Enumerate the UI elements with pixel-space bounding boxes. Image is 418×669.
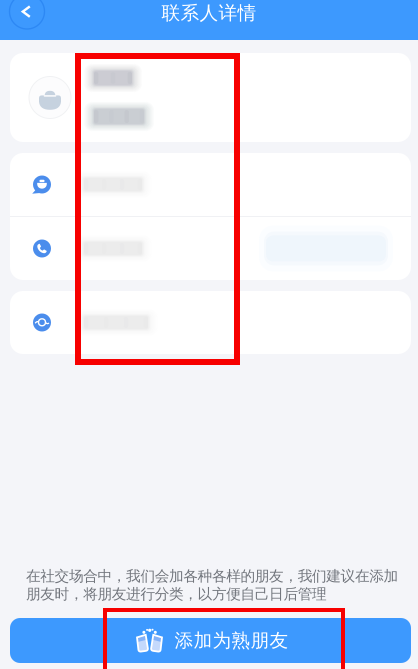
- button[interactable]: 添加为熟朋友: [10, 618, 411, 663]
- button[interactable]: [10, 217, 411, 280]
- staticText: 联系人详情: [161, 1, 256, 24]
- button[interactable]: [10, 291, 411, 354]
- button[interactable]: [10, 53, 411, 142]
- button[interactable]: Back: [0, 0, 54, 40]
- staticText: 在社交场合中，我们会加各种各样的朋友，我们建议在添加 朋友时，将朋友进行分类，以…: [26, 567, 398, 603]
- staticText: 添加为熟朋友: [174, 629, 288, 652]
- button[interactable]: [10, 153, 411, 216]
